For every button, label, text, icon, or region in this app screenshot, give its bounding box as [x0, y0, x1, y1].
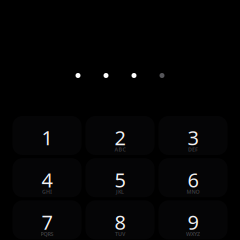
staticText: ABC: [114, 146, 125, 153]
staticText: DEF: [188, 146, 198, 153]
staticText: 5: [114, 166, 125, 193]
button[interactable]: 6: [158, 158, 227, 197]
staticText: 9: [187, 209, 198, 235]
button[interactable]: 8: [85, 200, 154, 239]
staticText: TUV: [115, 230, 125, 237]
staticText: 4: [41, 166, 52, 193]
button[interactable]: 4: [12, 158, 81, 197]
button[interactable]: 1: [12, 116, 81, 155]
staticText: 6: [187, 166, 198, 193]
button[interactable]: 9: [158, 200, 227, 239]
staticText: 3: [187, 124, 198, 151]
staticText: 1: [41, 124, 52, 151]
staticText: JKL: [116, 188, 124, 195]
staticText: WXYZ: [186, 230, 200, 237]
button[interactable]: 7: [12, 200, 81, 239]
staticText: 7: [41, 209, 52, 235]
staticText: PQRS: [40, 230, 53, 237]
button[interactable]: 2: [85, 116, 154, 155]
staticText: 8: [114, 209, 125, 235]
staticText: 2: [114, 124, 125, 151]
staticText: GHI: [42, 188, 52, 195]
button[interactable]: 5: [85, 158, 154, 197]
button[interactable]: 3: [158, 116, 227, 155]
staticText: MNO: [186, 188, 199, 195]
